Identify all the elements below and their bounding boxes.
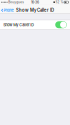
staticText: Bouygues [8, 0, 24, 4]
button[interactable]: Show My Caller ID [0, 20, 70, 30]
staticText: 16:36 [31, 0, 39, 4]
staticText: 52 % [56, 0, 64, 4]
staticText: Phone [3, 8, 13, 13]
staticText: Show My Caller ID [3, 22, 34, 27]
button[interactable]: Phone [0, 4, 14, 14]
staticText: Show My Caller ID [16, 8, 54, 13]
